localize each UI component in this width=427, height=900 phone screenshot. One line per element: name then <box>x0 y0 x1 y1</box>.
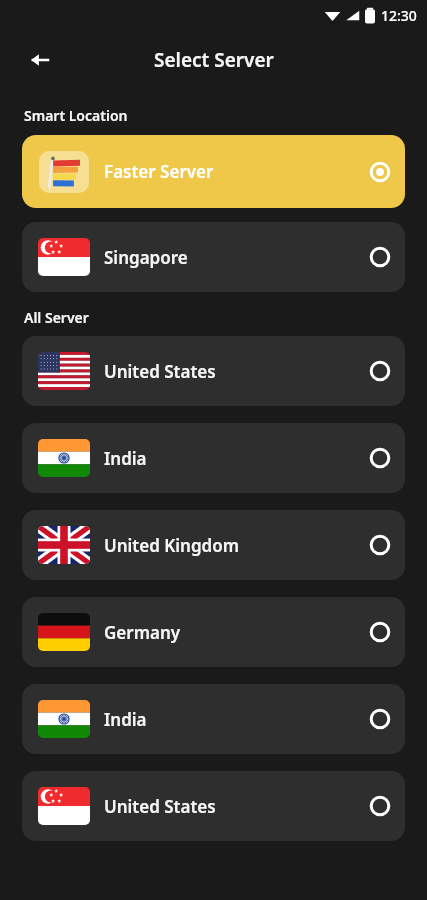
staticText: Smart Location <box>24 106 128 125</box>
staticText: 12:30 <box>381 6 417 25</box>
button[interactable]: United States <box>22 336 405 406</box>
staticText: Singapore <box>104 246 369 269</box>
staticText: India <box>104 708 369 731</box>
staticText: India <box>104 447 369 470</box>
button[interactable]: United States <box>22 771 405 841</box>
staticText: Faster Server <box>104 160 369 183</box>
button[interactable]: India <box>22 423 405 493</box>
button[interactable]: India <box>22 684 405 754</box>
staticText: United States <box>104 795 369 818</box>
staticText: United States <box>104 360 369 383</box>
staticText: Select Server <box>154 47 274 73</box>
button[interactable]: Singapore <box>22 222 405 292</box>
button[interactable]: Germany <box>22 597 405 667</box>
button[interactable]: Back <box>18 38 62 82</box>
staticText: Germany <box>104 621 369 644</box>
staticText: All Server <box>24 308 89 327</box>
button[interactable]: United Kingdom <box>22 510 405 580</box>
button[interactable]: Faster Server <box>22 135 405 208</box>
staticText: United Kingdom <box>104 534 369 557</box>
